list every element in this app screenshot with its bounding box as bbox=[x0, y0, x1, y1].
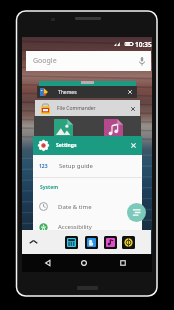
button[interactable]: Settings bbox=[33, 136, 142, 155]
button[interactable]: Home bbox=[80, 259, 88, 267]
button[interactable]: Accessibility bbox=[33, 216, 142, 238]
button[interactable]: Recent apps bbox=[119, 259, 127, 267]
button[interactable]: Back bbox=[44, 259, 52, 267]
button[interactable]: Browser bbox=[122, 236, 135, 249]
button[interactable]: Themes bbox=[37, 86, 137, 98]
staticText: System bbox=[40, 184, 59, 191]
button[interactable]: File Commander bbox=[35, 100, 140, 117]
staticText: Accessibility bbox=[58, 223, 92, 231]
staticText: 123 bbox=[39, 163, 48, 170]
staticText: File Commander bbox=[57, 105, 96, 112]
other: Dismiss Settings bbox=[130, 142, 137, 149]
staticText: Setup guide bbox=[59, 162, 93, 170]
other: Voice search bbox=[139, 57, 145, 66]
button[interactable]: Messaging bbox=[85, 236, 98, 249]
other: Dismiss Themes bbox=[127, 89, 133, 95]
staticText: Google bbox=[33, 56, 57, 66]
button[interactable]: Google bbox=[26, 51, 151, 71]
button[interactable]: 123 bbox=[33, 155, 142, 177]
staticText: 10:35 bbox=[135, 40, 152, 49]
button[interactable]: Date & time bbox=[33, 197, 142, 216]
button[interactable]: Quick settings bbox=[127, 203, 146, 222]
button[interactable]: All apps bbox=[29, 239, 38, 245]
staticText: Settings bbox=[56, 142, 77, 149]
other: Dismiss File Commander bbox=[130, 106, 136, 112]
button[interactable]: Calculator bbox=[65, 236, 78, 249]
staticText: Date & time bbox=[58, 203, 92, 211]
staticText: Themes bbox=[58, 89, 77, 96]
button[interactable]: Music bbox=[104, 236, 117, 249]
